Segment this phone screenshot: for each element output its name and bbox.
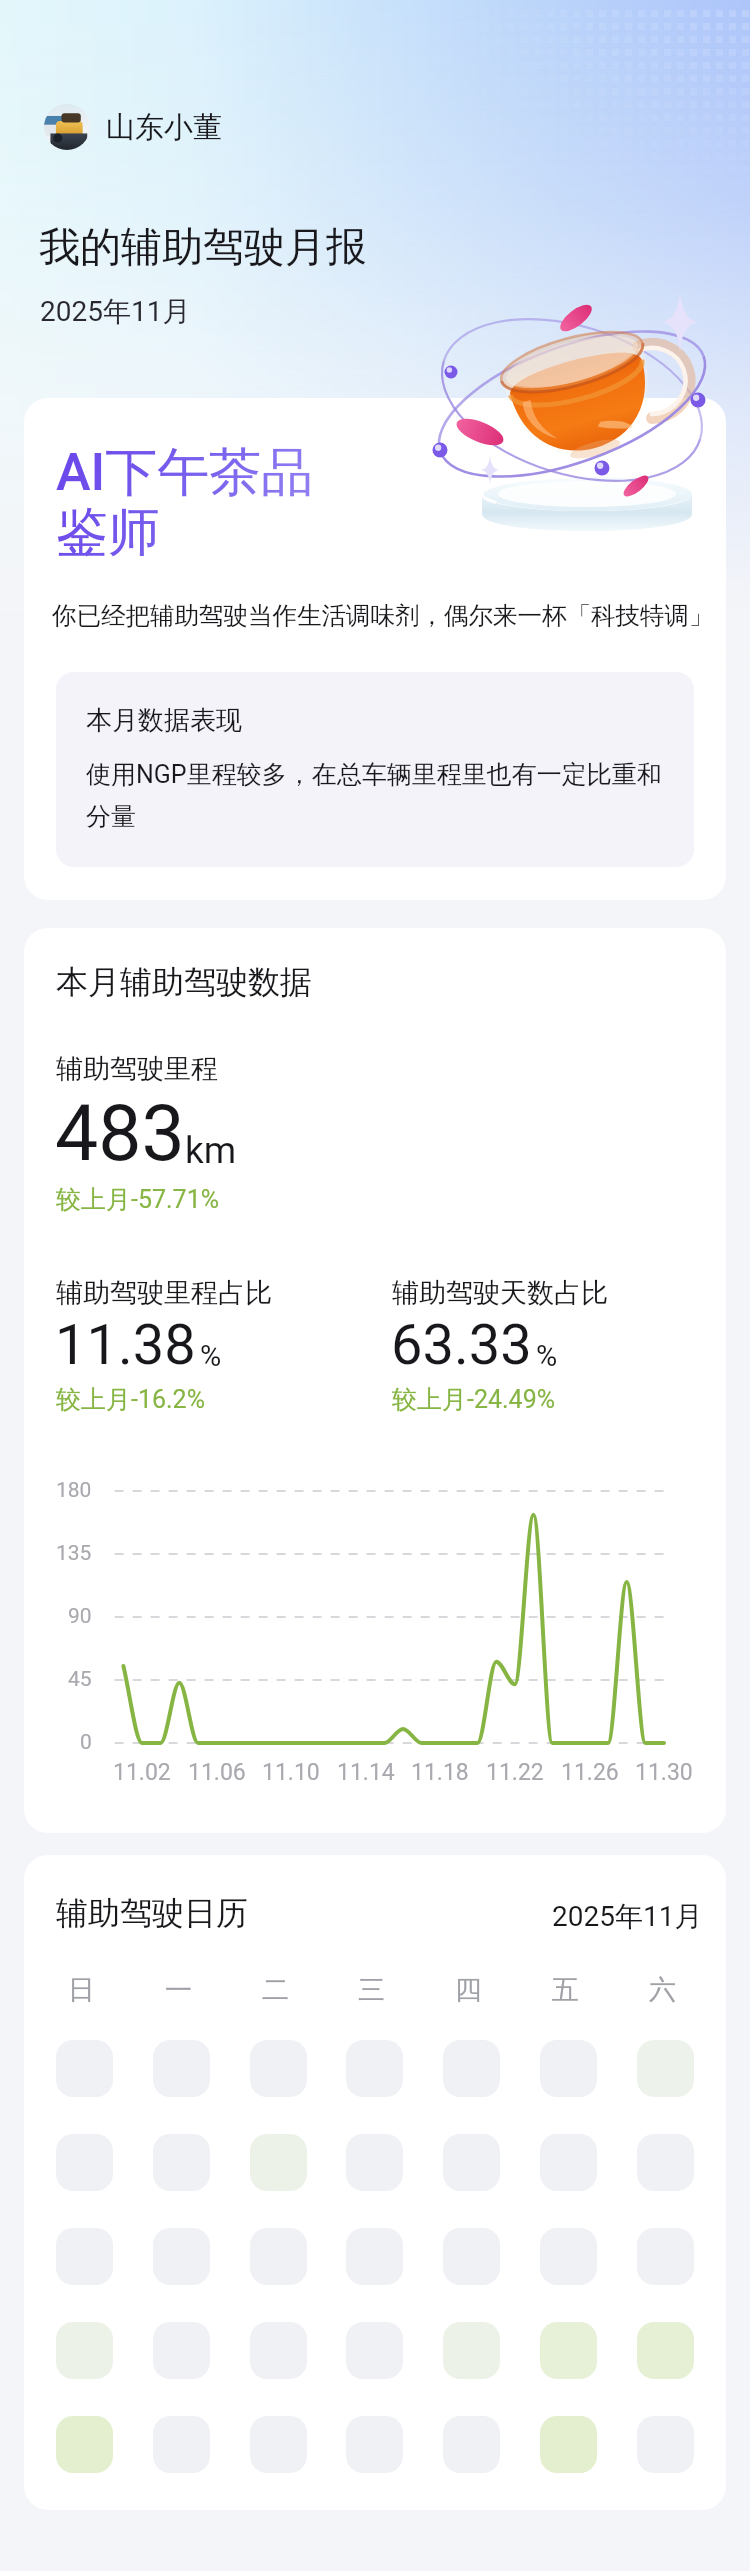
button[interactable] bbox=[443, 2416, 500, 2473]
staticText: 180 bbox=[56, 1478, 92, 1503]
staticText: % bbox=[536, 1339, 558, 1373]
button[interactable] bbox=[443, 2040, 500, 2097]
staticText: 11.10 bbox=[262, 1759, 320, 1786]
button[interactable] bbox=[540, 2322, 597, 2379]
staticText: 0 bbox=[80, 1730, 92, 1755]
staticText: 45 bbox=[68, 1667, 92, 1692]
staticText: % bbox=[200, 1339, 222, 1373]
staticText: 11.06 bbox=[188, 1759, 246, 1786]
staticText: 11.18 bbox=[411, 1759, 469, 1786]
staticText: 2025年11月 bbox=[40, 294, 191, 329]
staticText: 我的辅助驾驶月报 bbox=[39, 222, 367, 274]
staticText: 11.38 bbox=[55, 1312, 196, 1378]
button[interactable] bbox=[56, 2040, 113, 2097]
staticText: 你已经把辅助驾驶当作生活调味剂，偶尔来一杯「科技特调」 bbox=[52, 600, 750, 631]
button[interactable] bbox=[346, 2416, 403, 2473]
button[interactable] bbox=[346, 2134, 403, 2191]
staticText: 11.02 bbox=[113, 1759, 171, 1786]
staticText: 2025年11月 bbox=[552, 1899, 703, 1934]
button[interactable] bbox=[250, 2228, 307, 2285]
button[interactable] bbox=[250, 2134, 307, 2191]
button[interactable] bbox=[540, 2416, 597, 2473]
button[interactable] bbox=[540, 2134, 597, 2191]
staticText: 五 bbox=[552, 1973, 579, 2007]
staticText: km bbox=[185, 1129, 237, 1172]
button[interactable] bbox=[346, 2040, 403, 2097]
staticText: 辅助驾驶天数占比 bbox=[392, 1276, 608, 1310]
staticText: 四 bbox=[455, 1973, 482, 2007]
staticText: 本月数据表现 bbox=[86, 704, 242, 737]
button[interactable]: 用户 山东小董 bbox=[44, 104, 222, 150]
button[interactable] bbox=[637, 2228, 694, 2285]
button[interactable]: 辅助驾驶日历 bbox=[24, 1855, 726, 2510]
staticText: 二 bbox=[262, 1973, 289, 2007]
staticText: 山东小董 bbox=[106, 109, 222, 146]
staticText: 较上月-24.49% bbox=[392, 1384, 556, 1415]
staticText: 11.26 bbox=[561, 1759, 619, 1786]
staticText: 一 bbox=[165, 1973, 192, 2007]
button[interactable] bbox=[250, 2322, 307, 2379]
button[interactable] bbox=[56, 2228, 113, 2285]
button[interactable]: AI下午茶品鉴师 bbox=[24, 398, 726, 900]
button[interactable] bbox=[153, 2228, 210, 2285]
button[interactable]: 本月辅助驾驶数据 bbox=[24, 928, 726, 1833]
button[interactable] bbox=[346, 2228, 403, 2285]
staticText: 63.33 bbox=[391, 1312, 532, 1378]
button[interactable] bbox=[637, 2322, 694, 2379]
button[interactable] bbox=[250, 2416, 307, 2473]
staticText: 90 bbox=[68, 1604, 92, 1629]
button[interactable] bbox=[153, 2416, 210, 2473]
staticText: 本月辅助驾驶数据 bbox=[56, 962, 312, 1002]
button[interactable] bbox=[56, 2322, 113, 2379]
staticText: 三 bbox=[358, 1973, 385, 2007]
button[interactable] bbox=[637, 2416, 694, 2473]
staticText: 11.22 bbox=[486, 1759, 544, 1786]
staticText: 六 bbox=[649, 1973, 676, 2007]
button[interactable] bbox=[637, 2134, 694, 2191]
button[interactable] bbox=[153, 2040, 210, 2097]
staticText: 483 bbox=[55, 1089, 185, 1179]
button[interactable] bbox=[443, 2322, 500, 2379]
button[interactable] bbox=[56, 2416, 113, 2473]
staticText: 辅助驾驶里程占比 bbox=[56, 1276, 272, 1310]
button[interactable] bbox=[540, 2228, 597, 2285]
button[interactable] bbox=[540, 2040, 597, 2097]
staticText: 使用NGP里程较多，在总车辆里程里也有一定比重和分量 bbox=[86, 759, 672, 833]
staticText: 135 bbox=[56, 1541, 92, 1566]
staticText: AI下午茶品 鉴师 bbox=[56, 440, 314, 565]
staticText: 较上月-57.71% bbox=[56, 1184, 220, 1215]
button[interactable] bbox=[637, 2040, 694, 2097]
staticText: 较上月-16.2% bbox=[56, 1384, 205, 1415]
staticText: 11.14 bbox=[337, 1759, 395, 1786]
button[interactable] bbox=[250, 2040, 307, 2097]
button[interactable] bbox=[56, 2134, 113, 2191]
staticText: 辅助驾驶日历 bbox=[56, 1893, 248, 1933]
button[interactable] bbox=[153, 2322, 210, 2379]
button[interactable] bbox=[443, 2134, 500, 2191]
button[interactable] bbox=[443, 2228, 500, 2285]
staticText: 辅助驾驶里程 bbox=[56, 1052, 218, 1086]
button[interactable] bbox=[346, 2322, 403, 2379]
button[interactable] bbox=[153, 2134, 210, 2191]
staticText: 日 bbox=[68, 1973, 95, 2007]
staticText: 11.30 bbox=[635, 1759, 693, 1786]
